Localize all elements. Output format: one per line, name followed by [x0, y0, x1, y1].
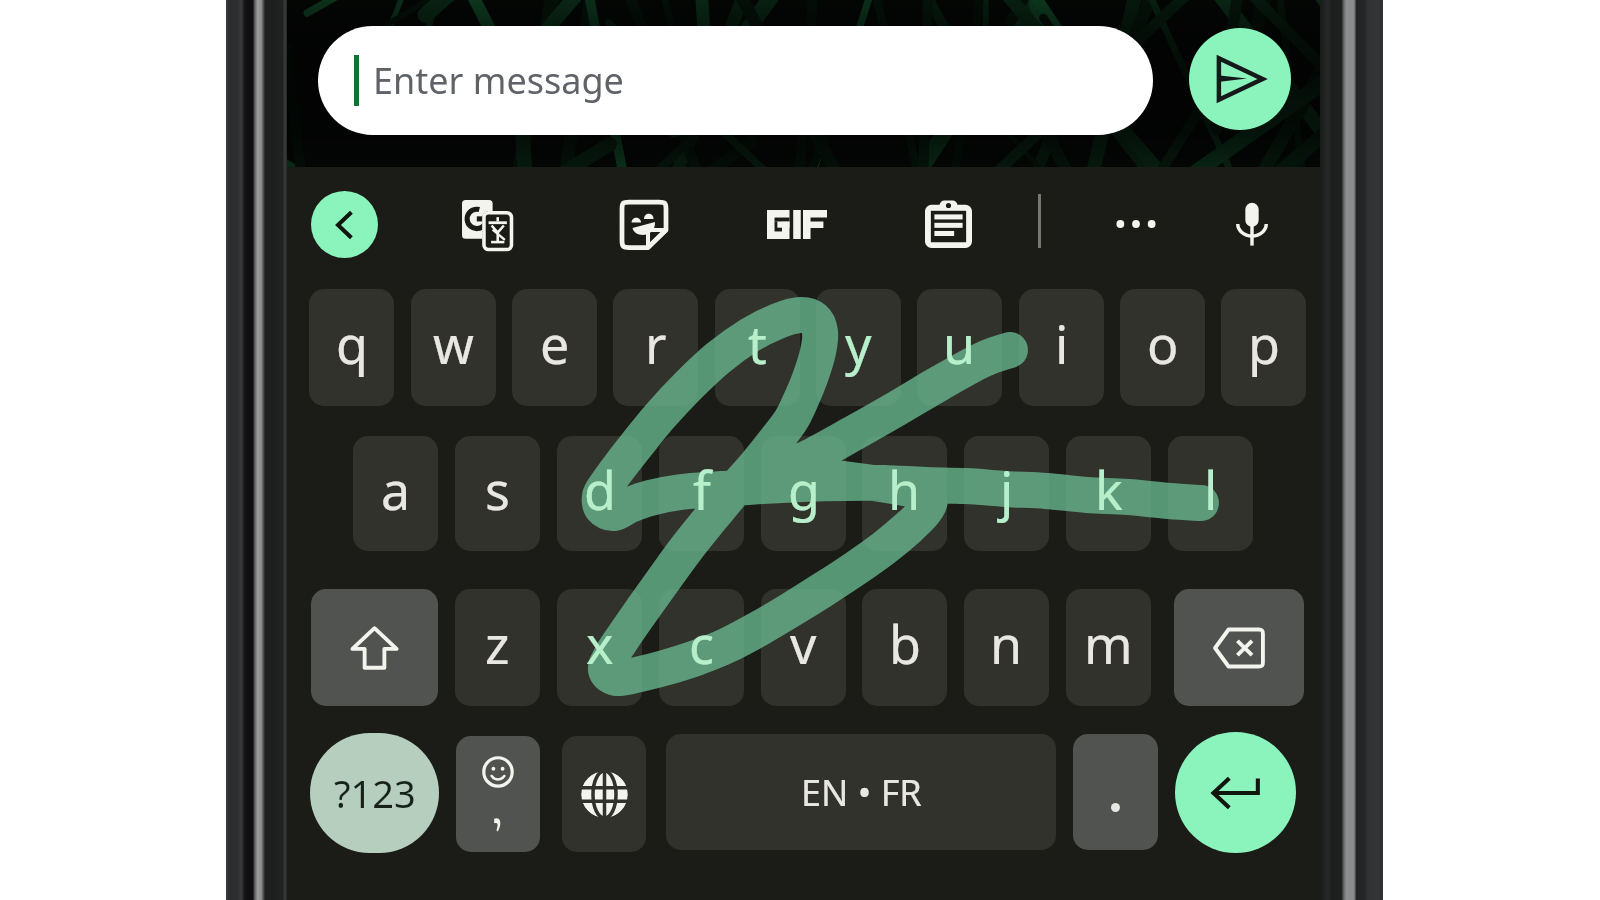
staticText: x [586, 608, 614, 679]
staticText: ?123 [334, 767, 416, 819]
button[interactable] [816, 289, 901, 406]
button[interactable]: Voice input [1218, 190, 1286, 258]
button[interactable] [1168, 436, 1253, 551]
button[interactable]: ?123 [310, 733, 439, 853]
staticText: y [845, 308, 872, 379]
button[interactable]: More options [1102, 190, 1170, 258]
staticText: p [1248, 308, 1280, 379]
button[interactable]: Backspace [1174, 589, 1304, 706]
staticText: u [943, 308, 976, 379]
staticText: g [788, 454, 820, 525]
button[interactable] [1019, 289, 1104, 406]
button[interactable]: Switch language [562, 736, 646, 852]
button[interactable] [455, 436, 540, 551]
button[interactable] [1073, 734, 1158, 850]
staticText: k [1095, 454, 1123, 525]
button[interactable] [659, 589, 744, 706]
button[interactable] [1221, 289, 1306, 406]
staticText: h [888, 454, 921, 525]
button[interactable]: Send [1189, 28, 1291, 130]
button[interactable]: GIF [763, 190, 831, 258]
staticText: t [748, 308, 767, 379]
staticText: w [433, 308, 474, 379]
staticText: z [485, 608, 510, 679]
staticText: l [1204, 454, 1218, 525]
button[interactable]: Enter [1175, 732, 1296, 853]
button[interactable]: Stickers [610, 190, 678, 258]
button[interactable]: Emoji [456, 736, 540, 852]
staticText: q [336, 308, 368, 379]
button[interactable] [964, 436, 1049, 551]
button[interactable]: Enter message [318, 26, 1153, 135]
button[interactable] [917, 289, 1002, 406]
button[interactable] [512, 289, 597, 406]
button[interactable]: Shift [311, 589, 438, 706]
staticText: r [645, 308, 667, 379]
staticText: e [540, 308, 570, 379]
button[interactable] [1120, 289, 1205, 406]
button[interactable] [411, 289, 496, 406]
button[interactable] [659, 436, 744, 551]
button[interactable] [761, 589, 846, 706]
button[interactable]: Clipboard [914, 190, 982, 258]
staticText: EN • FR [801, 768, 922, 817]
staticText: f [693, 454, 711, 525]
staticText: j [1000, 454, 1014, 525]
staticText: b [889, 608, 921, 679]
button[interactable]: EN • FR [666, 734, 1056, 850]
button[interactable] [1066, 436, 1151, 551]
button[interactable] [964, 589, 1049, 706]
staticText: a [381, 454, 411, 525]
staticText: o [1147, 308, 1179, 379]
button[interactable] [455, 589, 540, 706]
staticText: n [990, 608, 1023, 679]
staticText: v [790, 608, 817, 679]
button[interactable] [1066, 589, 1151, 706]
button[interactable] [557, 589, 642, 706]
staticText: c [689, 608, 714, 679]
staticText: Enter message [373, 56, 624, 105]
button[interactable] [557, 436, 642, 551]
button[interactable] [761, 436, 846, 551]
staticText: d [584, 454, 616, 525]
button[interactable] [309, 289, 394, 406]
staticText: s [485, 454, 510, 525]
button[interactable] [715, 289, 800, 406]
button[interactable] [353, 436, 438, 551]
button[interactable]: Translate [452, 190, 520, 258]
button[interactable] [862, 589, 947, 706]
button[interactable]: Back [311, 191, 378, 258]
staticText: i [1055, 308, 1069, 379]
staticText: m [1084, 608, 1133, 679]
button[interactable] [862, 436, 947, 551]
button[interactable] [613, 289, 698, 406]
